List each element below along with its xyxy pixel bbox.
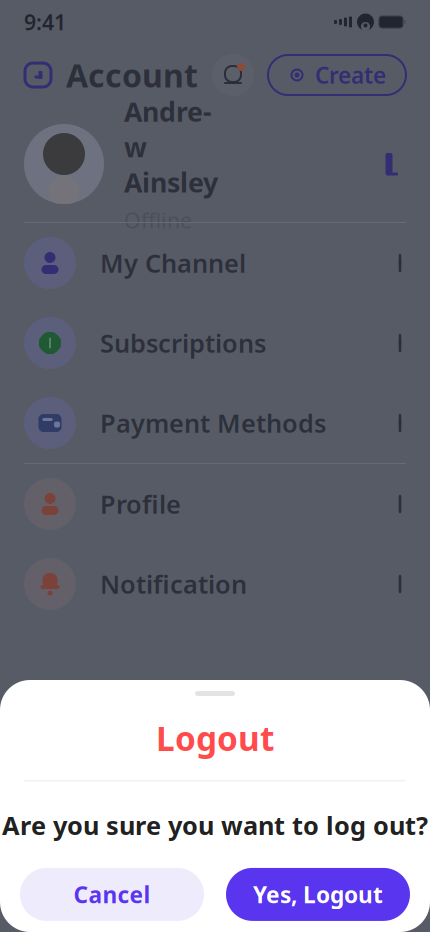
staticText: Cancel xyxy=(73,879,150,909)
staticText: Create xyxy=(315,60,386,90)
staticText: Logout xyxy=(156,716,274,760)
staticText: Yes, Logout xyxy=(253,879,383,909)
staticText: Notification xyxy=(100,567,247,601)
button[interactable]: My Channel xyxy=(0,223,430,303)
staticText: My Channel xyxy=(100,246,246,280)
button[interactable]: Notification xyxy=(0,544,430,624)
button[interactable]: Edit profile xyxy=(372,147,406,181)
button[interactable]: Profile xyxy=(0,464,430,544)
staticText: 9:41 xyxy=(24,8,66,36)
staticText: Are you sure you want to log out? xyxy=(2,808,428,842)
staticText: Andrew Ainsley xyxy=(124,94,218,200)
button[interactable]: Payment Methods xyxy=(0,383,430,463)
button[interactable]: Yes, Logout xyxy=(226,868,410,921)
button[interactable]: Subscriptions xyxy=(0,303,430,383)
staticText: Account xyxy=(66,54,198,96)
button[interactable]: Notifications xyxy=(212,54,254,96)
staticText: Profile xyxy=(100,487,181,521)
button[interactable]: Create xyxy=(268,55,406,95)
staticText: Offline xyxy=(124,206,192,234)
staticText: Payment Methods xyxy=(100,406,326,440)
button[interactable]: Cancel xyxy=(20,868,204,921)
staticText: Subscriptions xyxy=(100,326,266,360)
